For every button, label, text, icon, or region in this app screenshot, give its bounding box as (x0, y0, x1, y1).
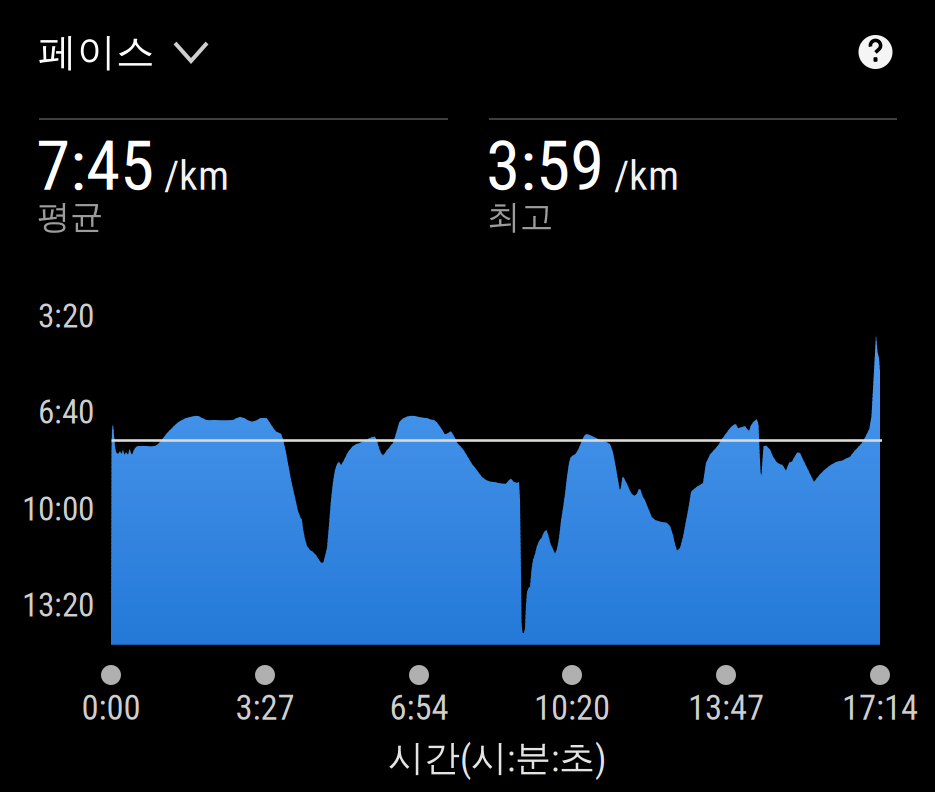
staticText: /km (614, 151, 679, 200)
staticText: 13:20 (22, 585, 94, 625)
staticText: 7:45 (36, 125, 154, 207)
button[interactable]: Help (854, 30, 897, 73)
staticText: 평균 (37, 196, 103, 238)
staticText: 0:00 (81, 688, 140, 728)
staticText: 6:54 (389, 688, 448, 728)
staticText: 13:47 (688, 688, 764, 728)
staticText: 6:40 (38, 392, 94, 432)
staticText: 10:20 (534, 688, 610, 728)
staticText: 3:59 (486, 125, 604, 207)
staticText: 3:27 (235, 688, 294, 728)
staticText: 페이스 (38, 28, 155, 76)
staticText: /km (164, 151, 229, 200)
staticText: 17:14 (842, 688, 918, 728)
staticText: 10:00 (22, 489, 94, 529)
staticText: 시간(시:분:초) (388, 735, 606, 781)
button[interactable]: 페이스 (38, 18, 207, 86)
staticText: 최고 (487, 196, 553, 238)
staticText: 3:20 (38, 296, 94, 336)
